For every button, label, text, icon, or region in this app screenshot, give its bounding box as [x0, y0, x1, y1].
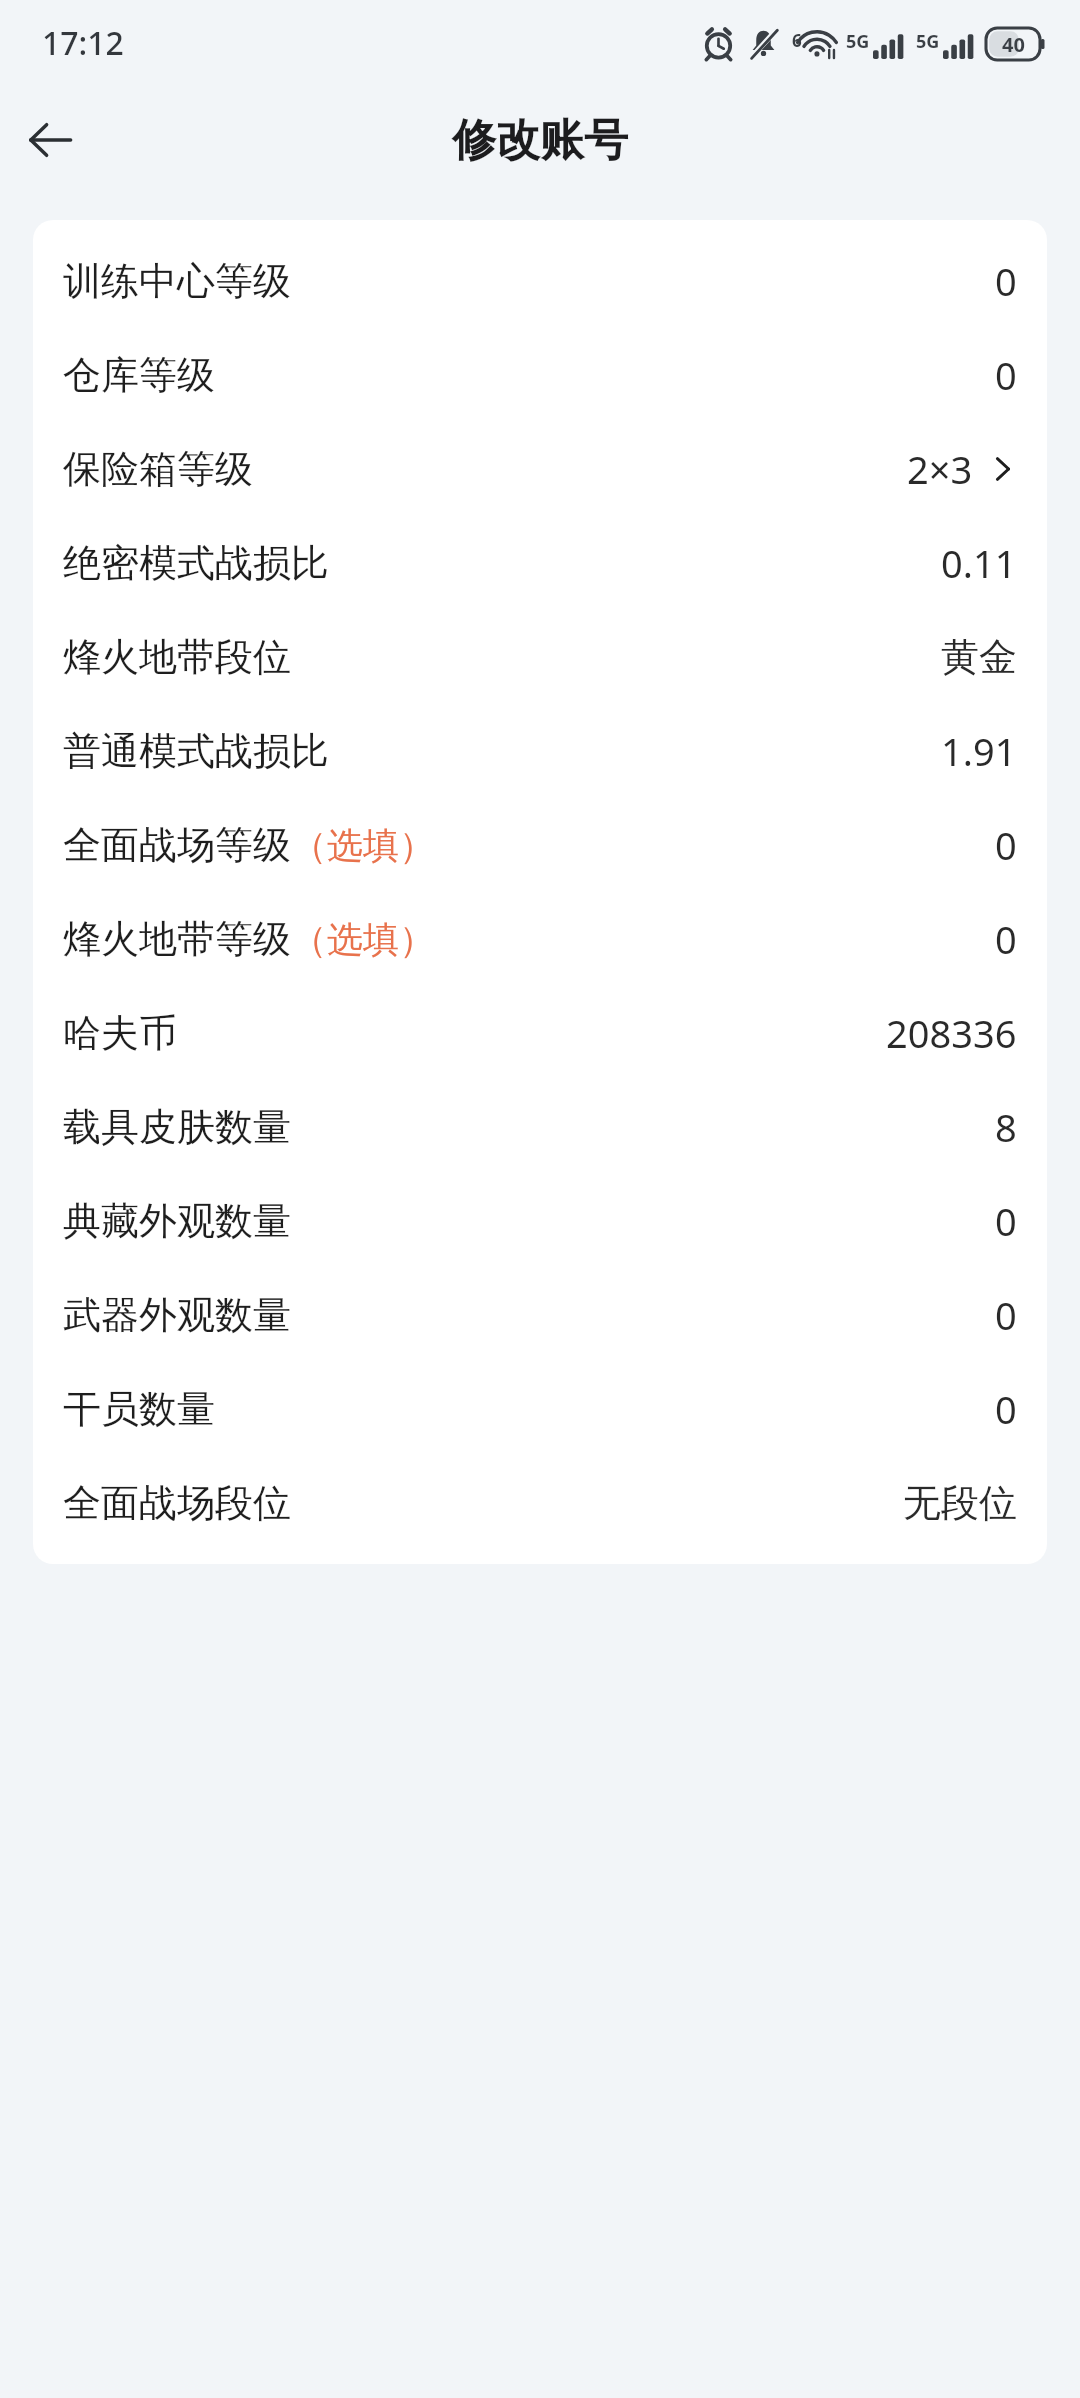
staticText: 载具皮肤数量 — [63, 1103, 291, 1151]
button[interactable]: 烽火地带段位 — [33, 610, 1047, 704]
staticText: 仓库等级 — [63, 351, 215, 399]
button[interactable]: Back — [12, 102, 88, 178]
button[interactable]: 烽火地带等级（选填） — [33, 892, 1047, 986]
staticText: 0.11 — [941, 537, 1017, 589]
staticText: 哈夫币 — [63, 1009, 177, 1057]
staticText: 典藏外观数量 — [63, 1197, 291, 1245]
button[interactable]: 绝密模式战损比 — [33, 516, 1047, 610]
staticText: 训练中心等级 — [63, 257, 291, 305]
staticText: 0 — [995, 913, 1017, 965]
staticText: 40 — [1002, 31, 1025, 58]
staticText: 2×3 — [907, 443, 973, 495]
staticText: 5G — [846, 29, 870, 54]
staticText: 普通模式战损比 — [63, 727, 329, 775]
staticText: 全面战场段位 — [63, 1479, 291, 1527]
staticText: 0 — [995, 1383, 1017, 1435]
staticText: 全面战场等级（选填） — [63, 821, 435, 869]
staticText: 17:12 — [42, 21, 124, 65]
staticText: 5G — [916, 29, 940, 54]
staticText: 6 — [792, 29, 802, 52]
button[interactable]: 载具皮肤数量 — [33, 1080, 1047, 1174]
staticText: 0 — [995, 1289, 1017, 1341]
staticText: 修改账号 — [452, 113, 628, 168]
button[interactable]: 武器外观数量 — [33, 1268, 1047, 1362]
staticText: 干员数量 — [63, 1385, 215, 1433]
staticText: 8 — [995, 1101, 1017, 1153]
staticText: 烽火地带等级（选填） — [63, 915, 435, 963]
button[interactable]: 仓库等级 — [33, 328, 1047, 422]
staticText: 烽火地带段位 — [63, 633, 291, 681]
staticText: 0 — [995, 255, 1017, 307]
staticText: 保险箱等级 — [63, 445, 253, 493]
staticText: 1.91 — [941, 725, 1017, 777]
staticText: 208336 — [886, 1007, 1017, 1059]
button[interactable]: 全面战场段位 — [33, 1456, 1047, 1550]
staticText: 武器外观数量 — [63, 1291, 291, 1339]
staticText: 0 — [995, 819, 1017, 871]
button[interactable]: 全面战场等级（选填） — [33, 798, 1047, 892]
button[interactable]: 保险箱等级 — [33, 422, 1047, 516]
button[interactable]: 典藏外观数量 — [33, 1174, 1047, 1268]
button[interactable]: 训练中心等级 — [33, 234, 1047, 328]
button[interactable]: 干员数量 — [33, 1362, 1047, 1456]
staticText: 无段位 — [903, 1479, 1017, 1527]
staticText: 黄金 — [941, 633, 1017, 681]
staticText: 0 — [995, 1195, 1017, 1247]
staticText: 0 — [995, 349, 1017, 401]
button[interactable]: 哈夫币 — [33, 986, 1047, 1080]
staticText: 绝密模式战损比 — [63, 539, 329, 587]
button[interactable]: 普通模式战损比 — [33, 704, 1047, 798]
